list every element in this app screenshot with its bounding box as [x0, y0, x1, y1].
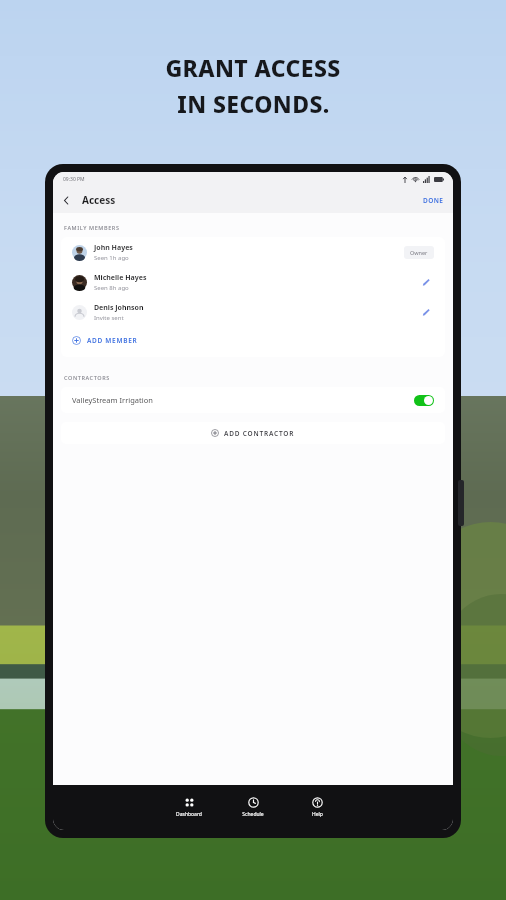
staticText: FAMILY MEMBERS: [64, 224, 120, 231]
staticText: Schedule: [242, 811, 264, 818]
staticText: Dashboard: [176, 811, 202, 818]
button[interactable]: ValleyStream Irrigation access toggle: [414, 395, 434, 406]
button[interactable]: Denis Johnson: [61, 297, 445, 327]
staticText: ADD CONTRACTOR: [224, 429, 295, 438]
staticText: Michelle Hayes: [94, 273, 147, 283]
staticText: IN SECONDS.: [177, 88, 330, 119]
staticText: Invite sent: [94, 314, 124, 322]
button[interactable]: ADD MEMBER: [61, 327, 445, 357]
button[interactable]: Schedule: [221, 794, 285, 821]
staticText: ValleyStream Irrigation: [72, 395, 414, 405]
staticText: Access: [82, 193, 116, 207]
staticText: John Hayes: [94, 243, 133, 253]
button[interactable]: John Hayes: [61, 237, 445, 267]
button[interactable]: Michelle Hayes: [61, 267, 445, 297]
button[interactable]: Edit Denis Johnson: [418, 304, 434, 320]
staticText: ADD MEMBER: [87, 336, 138, 345]
staticText: Help: [312, 811, 323, 818]
staticText: 09:30 PM: [63, 176, 85, 183]
button[interactable]: Help: [285, 794, 349, 821]
staticText: CONTRACTORS: [64, 374, 110, 381]
button[interactable]: Back: [57, 191, 75, 209]
button[interactable]: Edit Michelle Hayes: [418, 274, 434, 290]
staticText: Owner: [410, 249, 428, 256]
staticText: Seen 1h ago: [94, 254, 129, 262]
staticText: DONE: [423, 196, 444, 205]
button[interactable]: ADD CONTRACTOR: [61, 422, 445, 444]
button[interactable]: DONE: [414, 192, 453, 209]
staticText: Seen 8h ago: [94, 284, 129, 292]
staticText: GRANT ACCESS: [165, 52, 341, 83]
button[interactable]: Dashboard: [157, 794, 221, 821]
button[interactable]: ValleyStream Irrigation: [61, 387, 445, 413]
staticText: Denis Johnson: [94, 303, 144, 313]
